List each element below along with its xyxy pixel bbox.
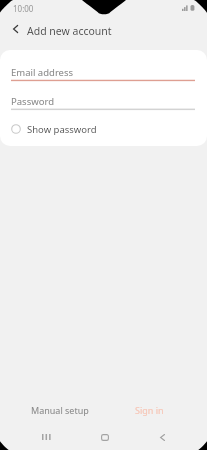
staticText: Manual setup [31, 404, 89, 416]
button[interactable]: Sign in [109, 398, 189, 422]
button[interactable]: Show password [0, 119, 207, 139]
staticText: 10:00 [13, 3, 34, 14]
button[interactable]: Back [4, 20, 28, 44]
button[interactable]: Recents [25, 424, 67, 450]
staticText: Password [11, 95, 54, 108]
button[interactable]: Manual setup [20, 398, 100, 422]
button[interactable]: Home [84, 424, 126, 450]
staticText: Add new account [27, 24, 112, 38]
staticText: Show password [27, 123, 97, 136]
staticText: Email address [11, 66, 74, 79]
staticText: Sign in [135, 404, 164, 416]
button[interactable]: Back [141, 424, 183, 450]
